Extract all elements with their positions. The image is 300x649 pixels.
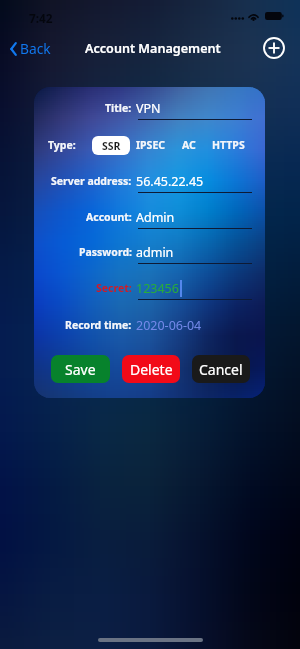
staticText: 7:42: [29, 10, 53, 26]
button[interactable]: Cancel: [192, 355, 250, 383]
button[interactable]: SSR: [92, 136, 130, 155]
staticText: 2020-06-04: [136, 317, 202, 334]
staticText: AC: [182, 138, 196, 152]
staticText: Type:: [48, 138, 76, 152]
button[interactable]: HTTPS: [209, 135, 248, 155]
staticText: Password:: [79, 245, 132, 259]
staticText: Server address:: [51, 174, 132, 188]
staticText: Secret:: [96, 281, 132, 295]
staticText: Admin: [136, 209, 175, 226]
staticText: HTTPS: [212, 138, 245, 152]
staticText: admin: [136, 244, 174, 261]
staticText: IPSEC: [136, 138, 166, 152]
staticText: Save: [65, 360, 96, 379]
staticText: 56.45.22.45: [136, 173, 204, 190]
staticText: Delete: [130, 360, 173, 379]
button[interactable]: Delete: [122, 355, 180, 383]
button[interactable]: AC: [179, 135, 199, 155]
staticText: SSR: [102, 139, 121, 153]
staticText: Cancel: [199, 360, 243, 379]
staticText: Title:: [105, 101, 132, 115]
button[interactable]: Save: [51, 355, 110, 383]
staticText: Account Management: [85, 40, 221, 57]
staticText: VPN: [136, 100, 161, 117]
staticText: Account:: [86, 210, 132, 224]
button[interactable]: Add account: [263, 37, 285, 59]
staticText: Record time:: [65, 318, 132, 332]
staticText: Back: [20, 39, 51, 58]
button[interactable]: Back: [0, 35, 59, 62]
staticText: 123456: [136, 280, 179, 297]
button[interactable]: IPSEC: [133, 135, 169, 155]
